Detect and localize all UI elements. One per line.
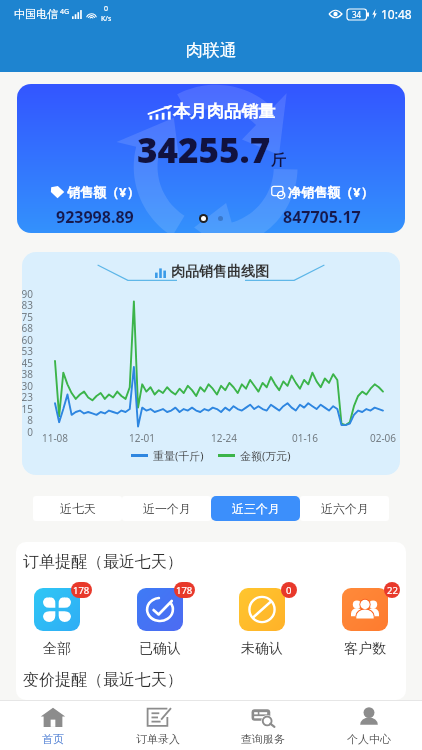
staticText: 15 xyxy=(22,402,33,416)
staticText: 客户数 xyxy=(344,640,386,658)
staticText: 01-16 xyxy=(285,431,325,445)
button[interactable]: 订单录入 xyxy=(105,701,210,750)
staticText: 近七天 xyxy=(60,501,96,516)
staticText: 847705.17 xyxy=(283,206,361,228)
button[interactable]: 178 xyxy=(34,588,80,658)
staticText: 38 xyxy=(22,367,33,381)
staticText: 178 xyxy=(176,584,193,597)
staticText: 订单录入 xyxy=(136,732,180,746)
staticText: 02-06 xyxy=(363,431,400,445)
staticText: 11-08 xyxy=(35,431,75,445)
staticText: 肉品销售曲线图 xyxy=(171,263,269,281)
button[interactable]: 近六个月 xyxy=(300,496,389,521)
staticText: 60 xyxy=(22,333,33,347)
button[interactable]: 近一个月 xyxy=(122,496,211,521)
staticText: 12-24 xyxy=(204,431,244,445)
staticText: 90 xyxy=(22,287,33,301)
staticText: 0 xyxy=(286,584,292,597)
staticText: 全部 xyxy=(43,640,71,658)
staticText: 22 xyxy=(387,584,398,597)
staticText: 75 xyxy=(22,310,33,324)
staticText: 近六个月 xyxy=(321,501,369,516)
staticText: 订单提醒（最近七天） xyxy=(23,552,183,572)
staticText: K/s xyxy=(101,14,112,24)
staticText: 923998.89 xyxy=(56,206,134,228)
staticText: 斤 xyxy=(271,151,286,170)
staticText: 近一个月 xyxy=(143,501,191,516)
button[interactable]: 个人中心 xyxy=(316,701,422,750)
staticText: 已确认 xyxy=(139,640,181,658)
staticText: 34255.7 xyxy=(137,126,271,174)
staticText: 23 xyxy=(22,390,33,404)
staticText: 变价提醒（最近七天） xyxy=(23,670,183,690)
staticText: 8 xyxy=(22,413,33,427)
staticText: 未确认 xyxy=(241,640,283,658)
button[interactable]: 近七天 xyxy=(33,496,122,521)
staticText: 查询服务 xyxy=(241,732,285,746)
staticText: 中国电信 xyxy=(14,7,58,21)
staticText: 0 xyxy=(104,4,109,14)
staticText: 45 xyxy=(22,356,33,370)
button[interactable]: 本月肉品销量 xyxy=(17,84,405,233)
staticText: 12-01 xyxy=(122,431,162,445)
button[interactable]: 首页 xyxy=(0,701,105,750)
staticText: 销售额（¥） xyxy=(67,183,140,201)
button[interactable]: 0 xyxy=(239,588,285,658)
staticText: 个人中心 xyxy=(347,732,391,746)
staticText: 83 xyxy=(22,298,33,312)
staticText: 178 xyxy=(73,584,90,597)
staticText: 金额(万元) xyxy=(240,448,291,463)
button[interactable]: 178 xyxy=(137,588,183,658)
staticText: 本月肉品销量 xyxy=(173,101,275,122)
button[interactable]: 查询服务 xyxy=(210,701,316,750)
staticText: 53 xyxy=(22,344,33,358)
staticText: 净销售额（¥） xyxy=(288,183,374,201)
staticText: 0 xyxy=(22,425,33,439)
staticText: 34 xyxy=(352,9,362,20)
button[interactable]: 近三个月 xyxy=(211,496,300,521)
staticText: 近三个月 xyxy=(232,501,280,516)
staticText: 重量(千斤) xyxy=(153,448,204,463)
button[interactable]: 22 xyxy=(342,588,388,658)
staticText: 4G xyxy=(60,7,70,17)
staticText: 68 xyxy=(22,321,33,335)
staticText: 首页 xyxy=(42,732,64,746)
staticText: 肉联通 xyxy=(186,40,237,61)
staticText: 10:48 xyxy=(381,6,412,22)
staticText: 30 xyxy=(22,379,33,393)
